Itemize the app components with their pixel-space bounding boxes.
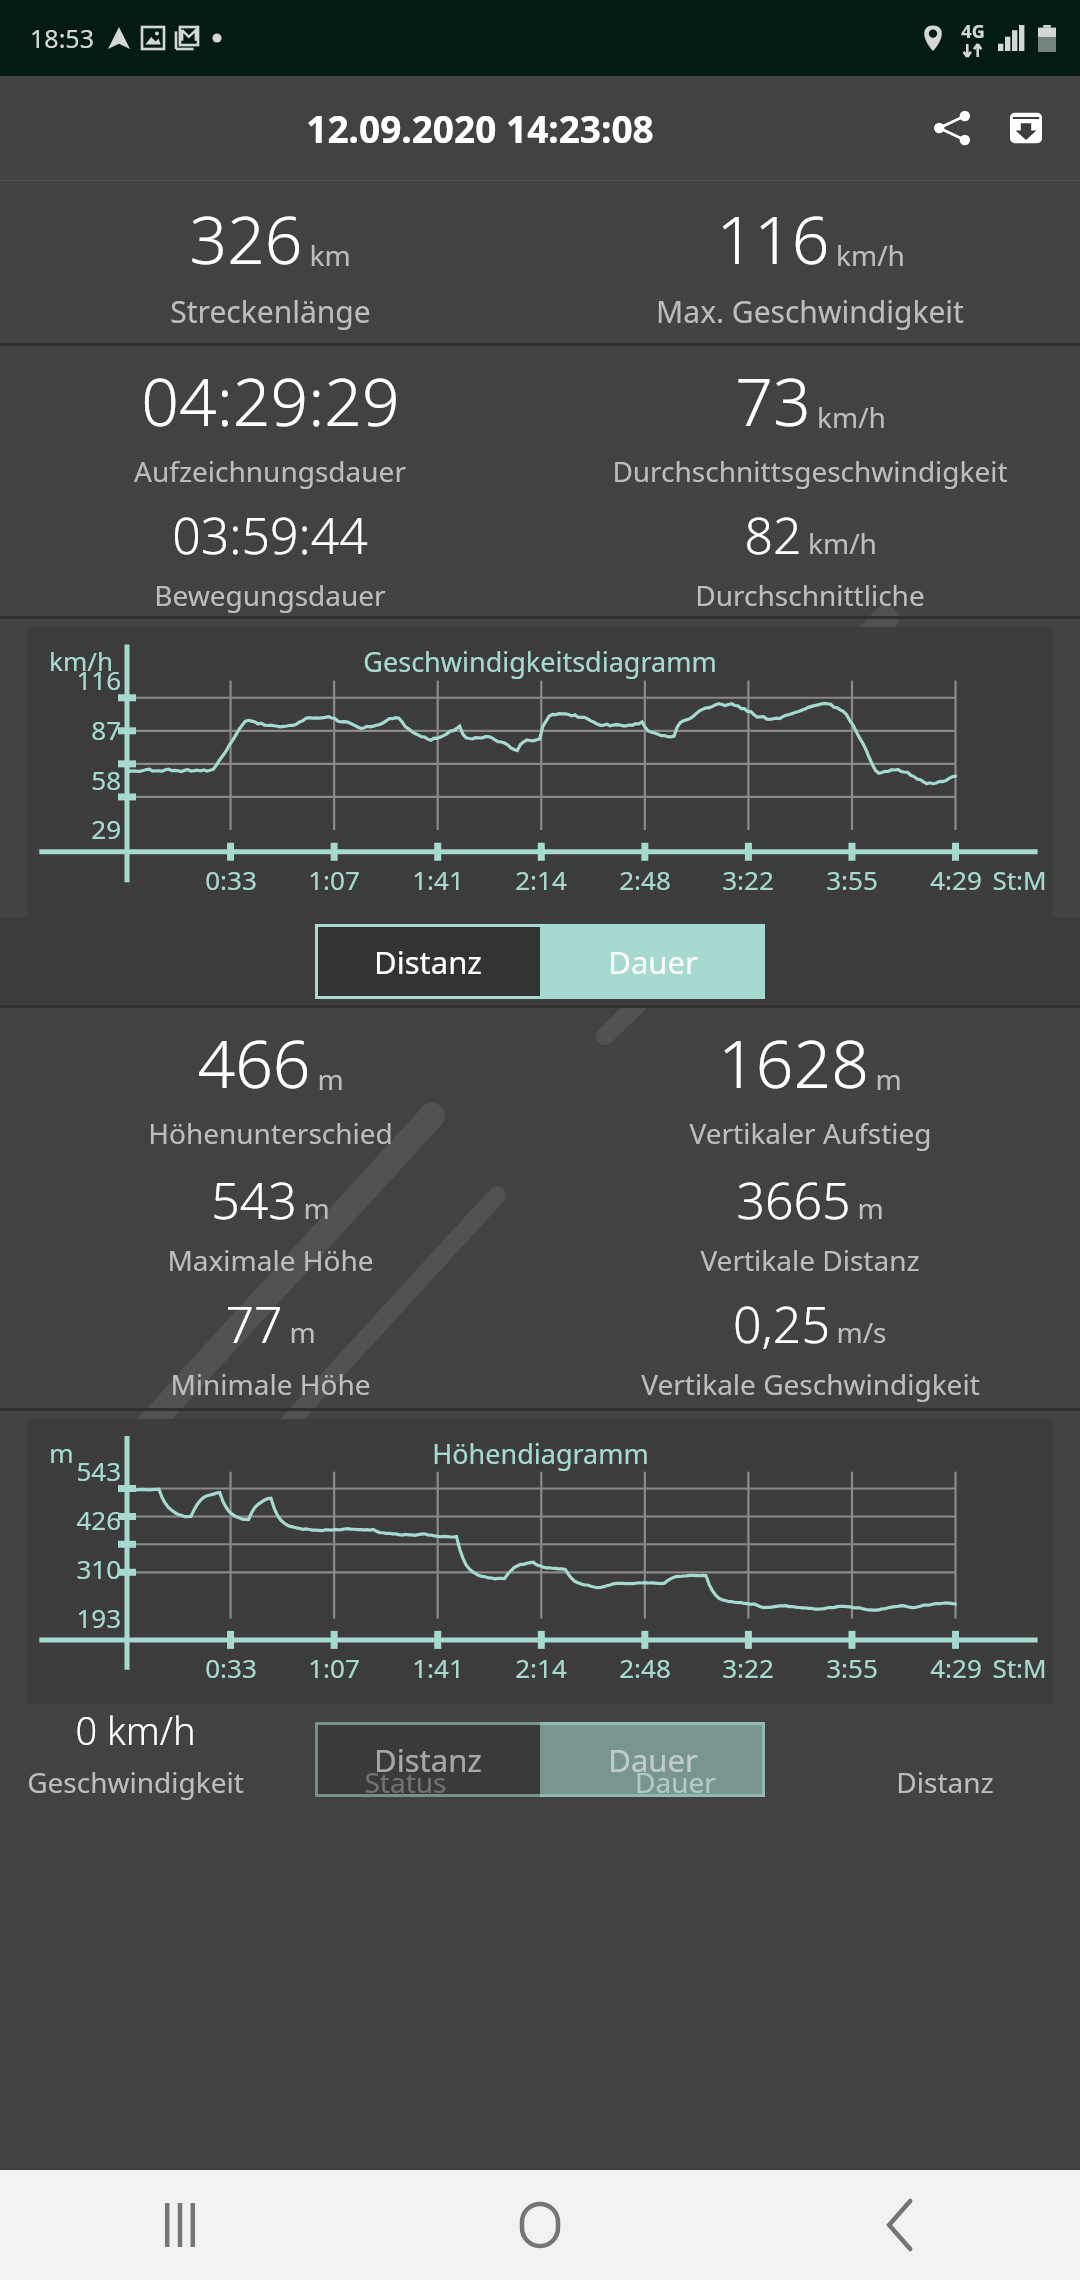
button[interactable]: Recents bbox=[0, 2170, 360, 2280]
button[interactable]: Distanz bbox=[315, 924, 540, 999]
staticText: km/h bbox=[49, 643, 113, 678]
staticText: 0:33 bbox=[186, 862, 276, 897]
staticText: 3:22 bbox=[703, 1650, 793, 1685]
staticText: 29 bbox=[31, 811, 121, 846]
button[interactable]: Dauer bbox=[540, 1722, 765, 1797]
staticText: Höhenunterschied bbox=[148, 1114, 393, 1152]
staticText: Minimale Höhe bbox=[170, 1365, 371, 1403]
button[interactable]: Dauer bbox=[540, 924, 765, 999]
staticText: Geschwindigkeitsdiagramm bbox=[363, 643, 717, 680]
staticText: Dauer bbox=[608, 941, 698, 983]
staticText: m bbox=[303, 1189, 330, 1227]
staticText: 116 bbox=[31, 662, 121, 697]
staticText: 03:59:44 bbox=[172, 501, 368, 569]
staticText: 2:14 bbox=[496, 862, 586, 897]
staticText: km/h bbox=[808, 524, 877, 562]
staticText: Dauer bbox=[608, 1739, 698, 1781]
staticText: Geschwindigkeit bbox=[27, 1763, 244, 1801]
staticText: Status bbox=[364, 1763, 447, 1801]
staticText: 1:07 bbox=[289, 1650, 379, 1685]
staticText: Durchschnittsgeschwindigkeit bbox=[612, 452, 1008, 490]
button[interactable]: Back bbox=[720, 2170, 1080, 2280]
button[interactable]: Distanz bbox=[315, 1722, 540, 1797]
staticText: 1628 bbox=[718, 1017, 869, 1107]
staticText: 2:48 bbox=[600, 862, 690, 897]
staticText: m/s bbox=[836, 1313, 887, 1351]
staticText: 1:41 bbox=[393, 1650, 483, 1685]
staticText: 116 bbox=[716, 193, 830, 283]
staticText: 4:29 bbox=[911, 862, 1001, 897]
staticText: St:M bbox=[992, 862, 1047, 897]
staticText: 77 bbox=[225, 1290, 283, 1358]
staticText: 58 bbox=[31, 762, 121, 797]
staticText: 0 km/h bbox=[75, 1704, 196, 1756]
button[interactable]: Share bbox=[920, 96, 984, 160]
staticText: Distanz bbox=[374, 1739, 482, 1781]
staticText: 0:33 bbox=[186, 1650, 276, 1685]
staticText: 426 bbox=[31, 1502, 121, 1537]
staticText: Dauer bbox=[635, 1763, 716, 1801]
staticText: 04:29:29 bbox=[141, 355, 400, 445]
staticText: 12.09.2020 14:23:08 bbox=[306, 103, 654, 153]
staticText: Streckenlänge bbox=[170, 291, 371, 332]
staticText: 466 bbox=[197, 1017, 311, 1107]
staticText: 3:55 bbox=[807, 862, 897, 897]
staticText: 193 bbox=[31, 1600, 121, 1635]
staticText: Höhendiagramm bbox=[432, 1435, 649, 1472]
staticText: Distanz bbox=[896, 1763, 994, 1801]
staticText: 2:48 bbox=[600, 1650, 690, 1685]
staticText: 2:14 bbox=[496, 1650, 586, 1685]
staticText: 4G bbox=[961, 19, 985, 44]
staticText: Max. Geschwindigkeit bbox=[656, 291, 964, 332]
staticText: 310 bbox=[31, 1551, 121, 1586]
staticText: km bbox=[309, 236, 351, 274]
staticText: Vertikale Geschwindigkeit bbox=[641, 1365, 980, 1403]
staticText: 3:22 bbox=[703, 862, 793, 897]
staticText: 73 bbox=[735, 355, 811, 445]
staticText: 4:29 bbox=[911, 1650, 1001, 1685]
staticText: Aufzeichnungsdauer bbox=[134, 452, 406, 490]
staticText: 0,25 bbox=[733, 1290, 830, 1358]
staticText: Vertikaler Aufstieg bbox=[689, 1114, 932, 1152]
staticText: St:M bbox=[992, 1650, 1047, 1685]
staticText: Distanz bbox=[374, 941, 482, 983]
staticText: m bbox=[857, 1189, 884, 1227]
button[interactable]: Home bbox=[360, 2170, 720, 2280]
button[interactable]: Archive bbox=[994, 96, 1058, 160]
staticText: 87 bbox=[31, 712, 121, 747]
staticText: m bbox=[289, 1313, 316, 1351]
staticText: km/h bbox=[836, 236, 905, 274]
staticText: 1:41 bbox=[393, 862, 483, 897]
staticText: m bbox=[317, 1060, 344, 1098]
staticText: m bbox=[49, 1435, 74, 1470]
staticText: 18:53 bbox=[30, 21, 94, 55]
staticText: m bbox=[875, 1060, 902, 1098]
staticText: Bewegungsdauer bbox=[154, 576, 386, 614]
staticText: Maximale Höhe bbox=[167, 1241, 374, 1279]
staticText: 3:55 bbox=[807, 1650, 897, 1685]
staticText: 326 bbox=[189, 193, 303, 283]
staticText: 1:07 bbox=[289, 862, 379, 897]
staticText: 3665 bbox=[736, 1166, 851, 1234]
staticText: 543 bbox=[211, 1166, 297, 1234]
staticText: 543 bbox=[31, 1453, 121, 1488]
staticText: km/h bbox=[817, 398, 886, 436]
staticText: 82 bbox=[744, 501, 802, 569]
staticText: Durchschnittliche Bewegungsgeschwind… bbox=[540, 576, 1080, 614]
staticText: Vertikale Distanz bbox=[700, 1241, 920, 1279]
